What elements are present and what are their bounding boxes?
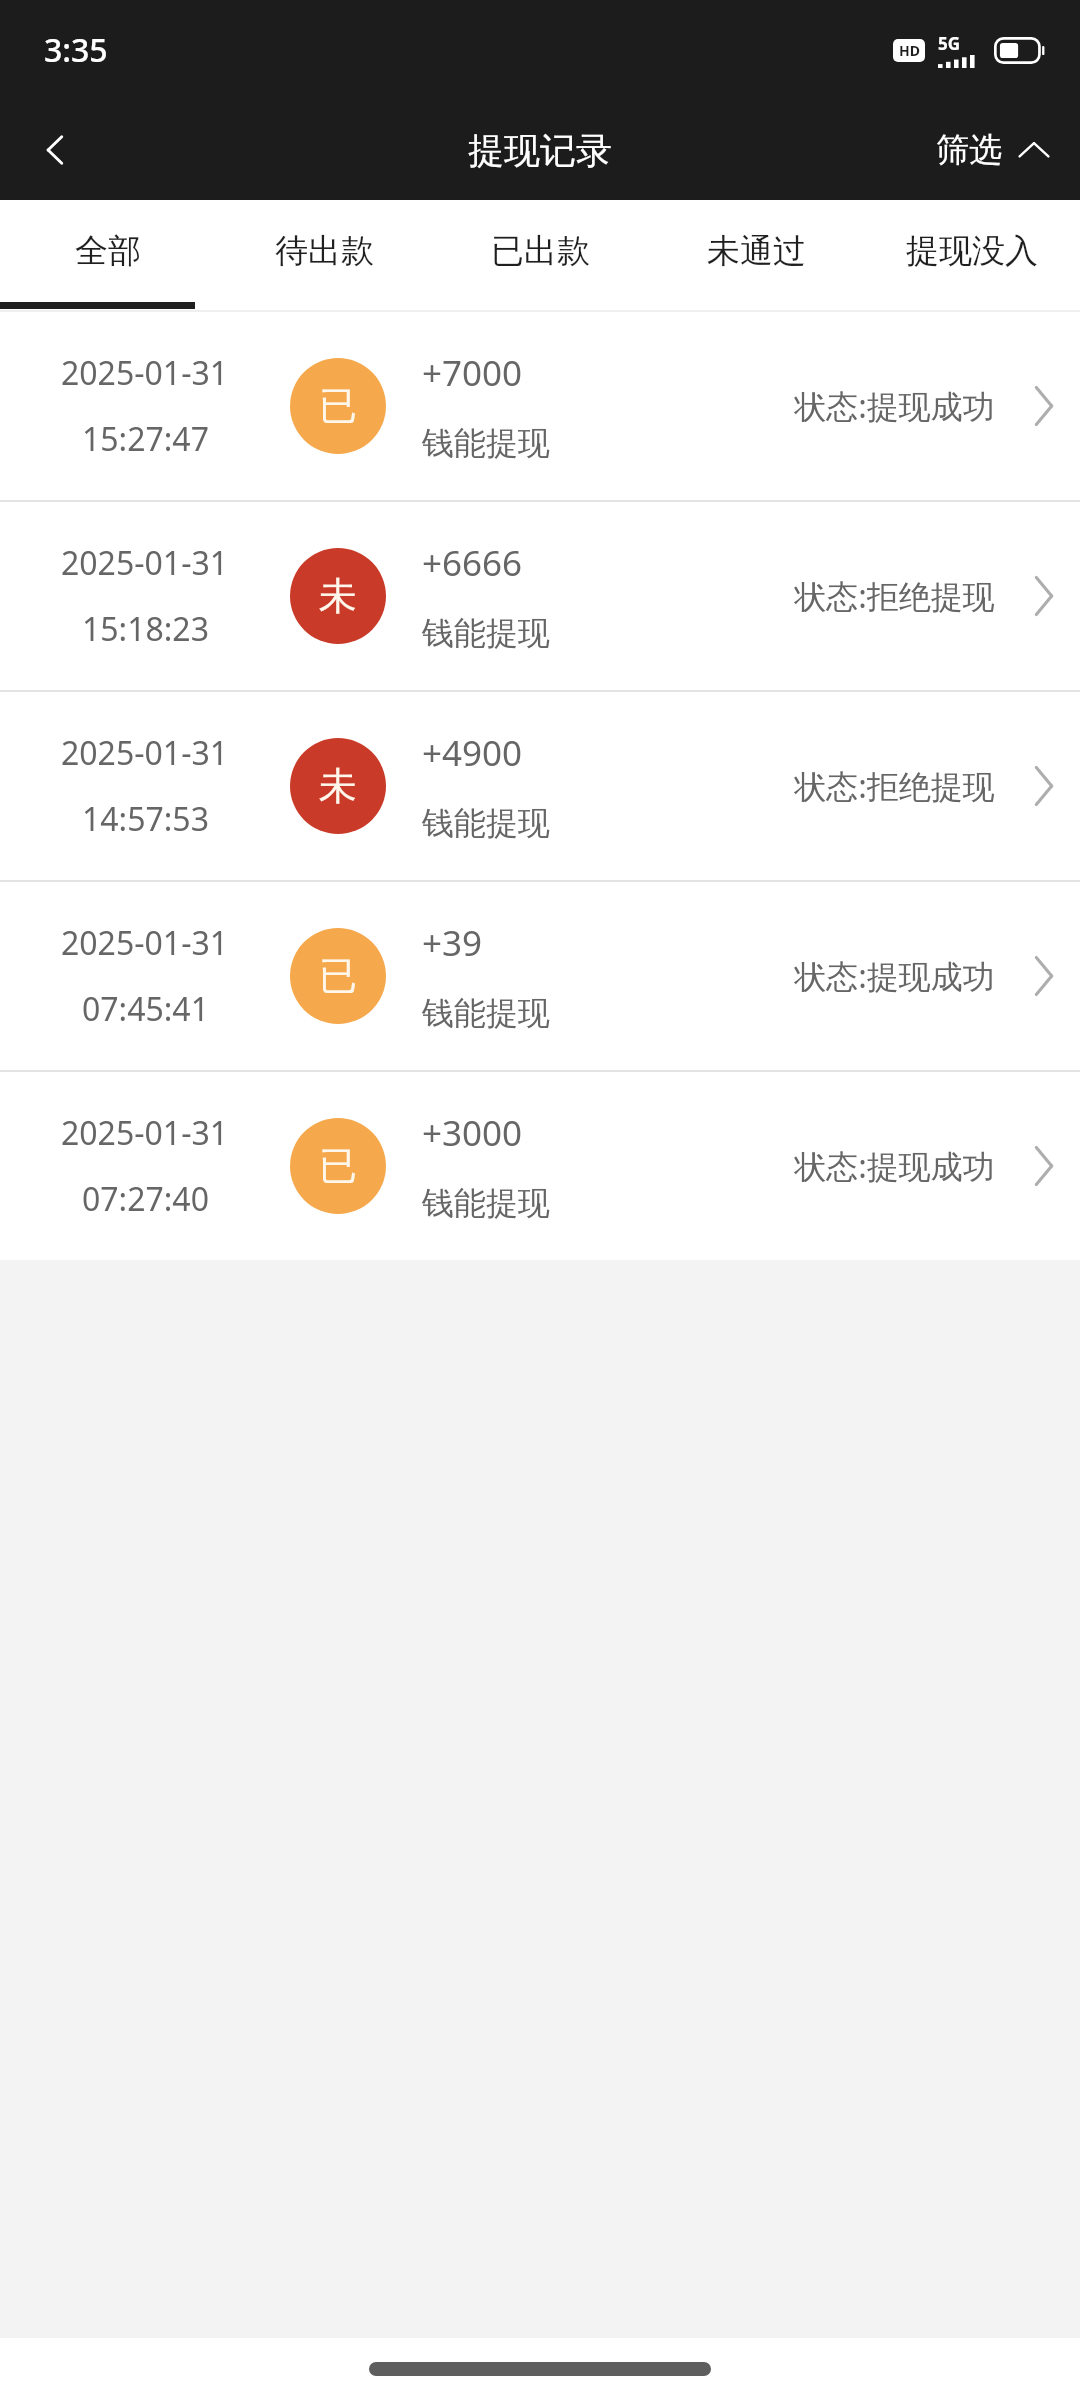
staticText: +7000	[422, 349, 523, 397]
staticText: 提现没入	[906, 230, 1038, 272]
staticText: 状态:提现成功	[794, 384, 995, 428]
staticText: +4900	[422, 729, 523, 777]
button[interactable]: 2025-01-31	[0, 1072, 1080, 1260]
staticText: 已出款	[491, 230, 590, 272]
staticText: 钱能提现	[422, 803, 550, 843]
button[interactable]: 2025-01-31	[0, 312, 1080, 500]
staticText: 已	[319, 1142, 357, 1190]
button[interactable]: 全部	[0, 200, 216, 312]
staticText: 2025-01-31	[61, 731, 229, 775]
staticText: 未	[319, 572, 357, 620]
staticText: 2025-01-31	[61, 921, 229, 965]
staticText: HD	[899, 41, 920, 60]
staticText: 07:45:41	[82, 987, 209, 1031]
staticText: 15:27:47	[82, 417, 209, 461]
staticText: 钱能提现	[422, 993, 550, 1033]
button[interactable]: 2025-01-31	[0, 502, 1080, 690]
staticText: 钱能提现	[422, 1183, 550, 1223]
button[interactable]: 待出款	[216, 200, 432, 312]
other: Details	[1008, 882, 1080, 1070]
staticText: 筛选	[936, 129, 1002, 171]
staticText: +6666	[422, 539, 523, 587]
staticText: 2025-01-31	[61, 1111, 229, 1155]
staticText: 未	[319, 762, 357, 810]
staticText: +3000	[422, 1109, 523, 1157]
staticText: 已	[319, 952, 357, 1000]
staticText: 钱能提现	[422, 613, 550, 653]
button[interactable]: 提现没入	[864, 200, 1080, 312]
button[interactable]: 2025-01-31	[0, 882, 1080, 1070]
staticText: 状态:拒绝提现	[794, 574, 995, 618]
button[interactable]: 未通过	[648, 200, 864, 312]
staticText: 已	[319, 382, 357, 430]
other: Details	[1008, 312, 1080, 500]
other: Details	[1008, 692, 1080, 880]
button[interactable]: Back	[0, 100, 112, 200]
staticText: 全部	[75, 230, 141, 272]
staticText: 状态:提现成功	[794, 954, 995, 998]
other: Details	[1008, 502, 1080, 690]
staticText: 状态:拒绝提现	[794, 764, 995, 808]
staticText: 待出款	[275, 230, 374, 272]
staticText: 未通过	[707, 230, 806, 272]
staticText: 5G	[938, 32, 961, 55]
button[interactable]: 已出款	[432, 200, 648, 312]
staticText: 2025-01-31	[61, 541, 229, 585]
staticText: 钱能提现	[422, 423, 550, 463]
staticText: 提现记录	[468, 128, 612, 173]
staticText: 15:18:23	[82, 607, 209, 651]
staticText: 2025-01-31	[61, 351, 229, 395]
button[interactable]: 筛选	[908, 100, 1080, 200]
staticText: 14:57:53	[82, 797, 209, 841]
button[interactable]: 2025-01-31	[0, 692, 1080, 880]
staticText: +39	[422, 919, 483, 967]
staticText: 3:35	[44, 28, 108, 72]
staticText: 07:27:40	[82, 1177, 209, 1221]
other: Details	[1008, 1072, 1080, 1260]
staticText: 状态:提现成功	[794, 1144, 995, 1188]
